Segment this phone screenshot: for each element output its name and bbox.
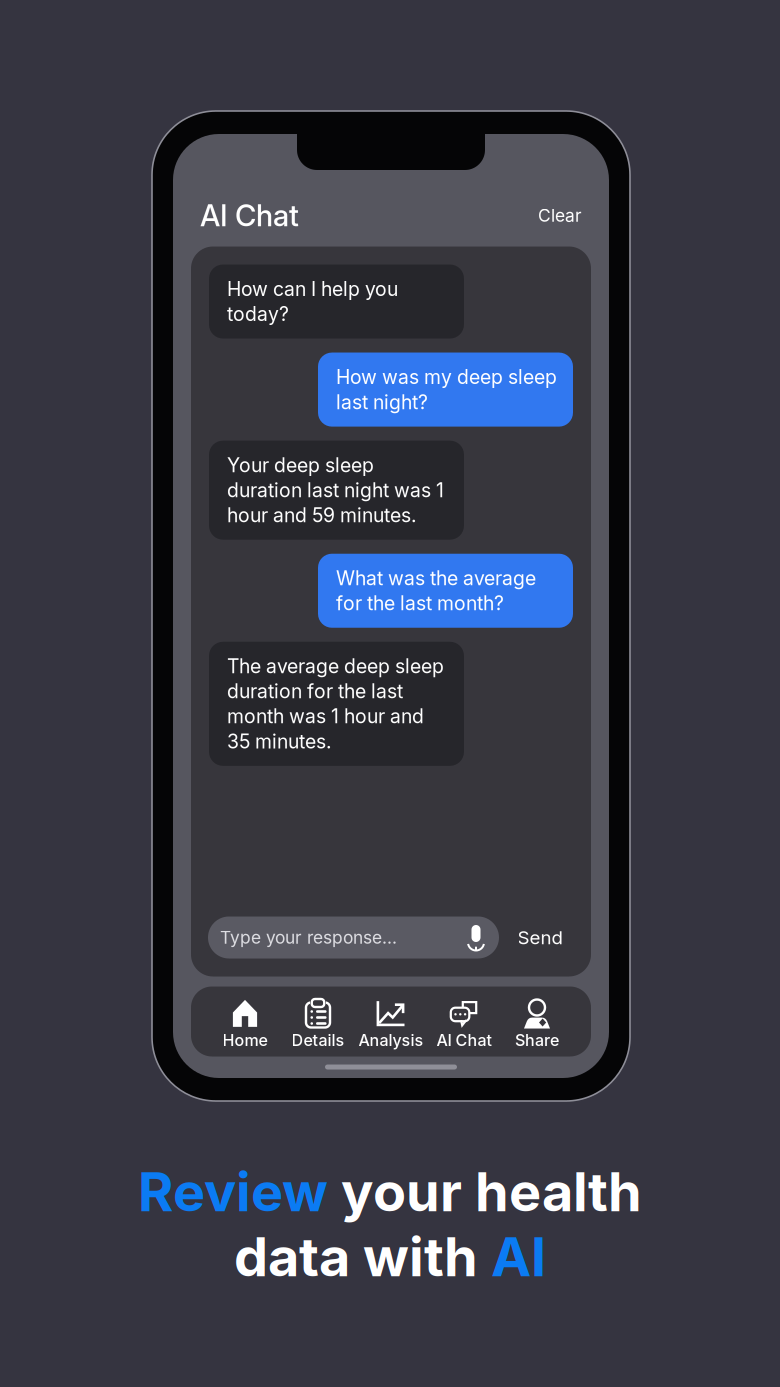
staticText: data with: [234, 1224, 491, 1289]
staticText: AI Chat: [200, 198, 299, 233]
staticText: Details: [291, 1030, 344, 1050]
button[interactable]: Home: [208, 986, 281, 1056]
button[interactable]: Share: [500, 986, 573, 1056]
button[interactable]: Send: [505, 916, 575, 958]
staticText: Clear: [538, 205, 582, 226]
staticText: What was the average for the last month?: [336, 566, 536, 616]
staticText: How was my deep sleep last night?: [336, 365, 557, 415]
staticText: Analysis: [358, 1030, 423, 1050]
staticText: Share: [515, 1030, 559, 1050]
button[interactable]: Analysis: [354, 986, 427, 1056]
button[interactable]: AI Chat: [427, 986, 500, 1056]
staticText: Type your response...: [220, 927, 397, 948]
staticText: AI: [491, 1224, 546, 1289]
staticText: The average deep sleep duration for the …: [227, 654, 444, 754]
staticText: Home: [222, 1030, 267, 1050]
staticText: your health: [341, 1159, 642, 1224]
staticText: Review: [138, 1159, 341, 1224]
staticText: AI Chat: [436, 1030, 491, 1050]
staticText: How can I help you today?: [227, 276, 398, 327]
button[interactable]: Clear: [532, 198, 588, 232]
staticText: Your deep sleep duration last night was …: [227, 453, 444, 528]
button[interactable]: Details: [281, 986, 354, 1056]
staticText: Send: [517, 926, 562, 949]
button[interactable]: Dictate: [465, 924, 487, 950]
